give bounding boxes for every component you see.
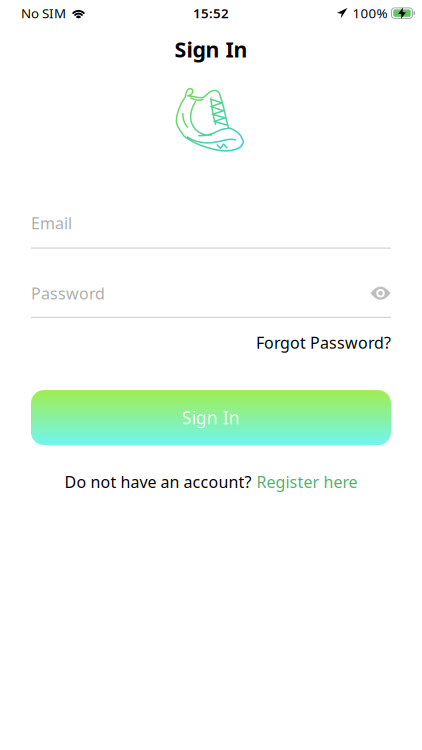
secureTextField[interactable]: Password <box>31 283 391 304</box>
staticText: 15:52 <box>193 4 229 22</box>
staticText: Sign In <box>182 406 240 429</box>
button[interactable]: Show password <box>370 283 391 303</box>
staticText: Password <box>31 283 105 304</box>
button[interactable]: Sign In <box>31 390 391 445</box>
textField[interactable]: Email <box>31 212 391 233</box>
staticText: Sign In <box>174 35 247 63</box>
staticText: Register here <box>256 471 357 492</box>
button[interactable]: Forgot Password? <box>256 332 391 353</box>
staticText: 100% <box>352 4 387 22</box>
button[interactable]: Register here <box>256 471 357 492</box>
staticText: Email <box>31 212 72 233</box>
staticText: Forgot Password? <box>256 332 391 353</box>
staticText: No SIM <box>21 4 66 22</box>
staticText: Do not have an account? <box>64 471 251 492</box>
